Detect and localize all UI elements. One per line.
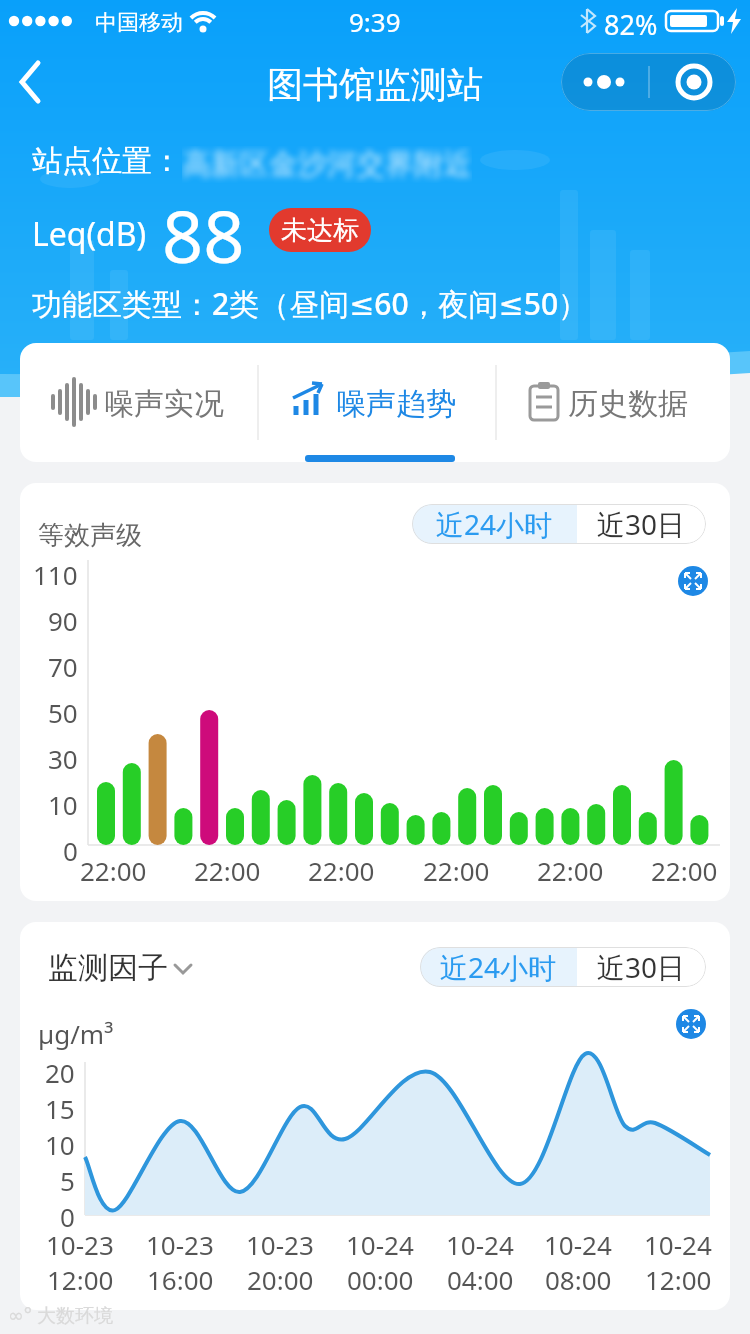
staticText: 30 [48, 741, 78, 776]
staticText: 近24小时 [440, 948, 557, 986]
staticText: 10-24 [446, 1227, 514, 1262]
staticText: 50 [48, 695, 78, 730]
staticText: 10-23 [246, 1227, 314, 1262]
staticText: 22:00 [537, 853, 604, 888]
staticText: 22:00 [194, 853, 261, 888]
staticText: ∞° 大数环境 [8, 1302, 113, 1328]
staticText: 未达标 [281, 214, 359, 247]
button[interactable]: 未达标 [269, 208, 371, 252]
staticText: 10-24 [346, 1227, 414, 1262]
staticText: 90 [48, 603, 78, 638]
staticText: 0 [60, 1199, 75, 1234]
button[interactable]: 近24小时 [412, 504, 577, 544]
staticText: 近24小时 [436, 505, 553, 543]
staticText: 12:00 [645, 1262, 712, 1297]
staticText: 图书馆监测站 [267, 62, 483, 107]
staticText: 近30日 [597, 505, 686, 543]
staticText: 等效声级 [38, 519, 142, 552]
staticText: Leq(dB) [32, 212, 147, 256]
staticText: 15 [45, 1091, 75, 1126]
staticText: 10-24 [644, 1227, 712, 1262]
staticText: 22:00 [651, 853, 718, 888]
staticText: 110 [33, 557, 78, 592]
staticText: 9:39 [349, 4, 401, 39]
staticText: 历史数据 [568, 385, 688, 423]
staticText: 中国移动 [95, 9, 183, 37]
staticText: 近30日 [597, 948, 686, 986]
staticText: 22:00 [80, 853, 147, 888]
staticText: 70 [48, 649, 78, 684]
staticText: 功能区类型：2类（昼间≤60，夜间≤50） [32, 283, 589, 324]
staticText: µg/m³ [38, 1016, 114, 1051]
staticText: 00:00 [347, 1262, 414, 1297]
button[interactable]: 近30日 [577, 504, 706, 544]
staticText: 监测因子 [48, 949, 168, 987]
button[interactable] [561, 53, 736, 111]
button[interactable] [20, 343, 256, 462]
staticText: 10-24 [544, 1227, 612, 1262]
button[interactable] [256, 343, 493, 462]
staticText: 0 [63, 833, 78, 868]
staticText: 20 [45, 1055, 75, 1090]
staticText: 10 [48, 787, 78, 822]
button[interactable] [0, 40, 120, 126]
staticText: 10 [45, 1127, 75, 1162]
staticText: 10-23 [46, 1227, 114, 1262]
button[interactable]: 近24小时 [420, 947, 577, 987]
staticText: 82% [604, 6, 658, 43]
staticText: 高新区金沙河交界附近 [182, 146, 472, 183]
staticText: 22:00 [423, 853, 490, 888]
staticText: 08:00 [545, 1262, 612, 1297]
staticText: 20:00 [247, 1262, 314, 1297]
button[interactable]: 近30日 [577, 947, 706, 987]
button[interactable]: 监测因子 [48, 949, 196, 987]
staticText: 站点位置： [32, 142, 182, 180]
staticText: 22:00 [308, 853, 375, 888]
staticText: 噪声趋势 [336, 385, 456, 423]
staticText: 16:00 [147, 1262, 214, 1297]
staticText: 10-23 [146, 1227, 214, 1262]
staticText: 5 [60, 1163, 75, 1198]
staticText: 04:00 [447, 1262, 514, 1297]
staticText: 噪声实况 [104, 385, 224, 423]
staticText: 12:00 [47, 1262, 114, 1297]
button[interactable] [493, 343, 730, 462]
staticText: 88 [162, 186, 245, 284]
